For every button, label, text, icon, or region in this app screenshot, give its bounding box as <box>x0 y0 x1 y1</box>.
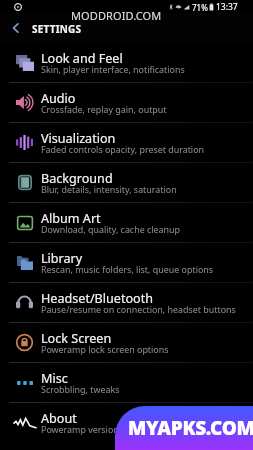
staticText: 71% <box>192 2 208 13</box>
button[interactable]: Headset/Bluetooth <box>0 283 253 322</box>
staticText: Background <box>41 170 113 187</box>
staticText: About <box>41 410 77 427</box>
staticText: Blur, details, intensity, saturation <box>41 183 177 195</box>
staticText: MODDROID.COM <box>71 8 162 23</box>
staticText: Lock Screen <box>41 330 112 347</box>
staticText: Scrobbling, tweaks <box>41 383 120 395</box>
button[interactable]: Audio <box>0 83 253 122</box>
staticText: 13:37 <box>216 1 238 13</box>
staticText: Audio <box>41 90 76 107</box>
button[interactable]: Album Art <box>0 203 253 242</box>
staticText: Faded controls opacity, preset duration <box>41 143 205 155</box>
button[interactable]: Library <box>0 243 253 282</box>
button[interactable]: Visualization <box>0 123 253 162</box>
staticText: Look and Feel <box>41 50 123 67</box>
button[interactable]: Look and Feel <box>0 43 253 82</box>
staticText: Headset/Bluetooth <box>41 290 154 307</box>
staticText: Pause/resume on connection, headset butt… <box>41 303 236 315</box>
button[interactable]: About <box>0 403 253 442</box>
staticText: Rescan, music folders, list, queue optio… <box>41 263 214 275</box>
staticText: Misc <box>41 370 68 387</box>
button[interactable]: Misc <box>0 363 253 402</box>
button[interactable]: Background <box>0 163 253 202</box>
staticText: Skin, player interface, notifications <box>41 63 185 75</box>
staticText: Crossfade, replay gain, output <box>41 103 167 115</box>
staticText: Album Art <box>41 210 101 227</box>
staticText: MYAPKS.COM <box>128 415 253 441</box>
staticText: Library <box>41 250 83 267</box>
staticText: Poweramp lock screen options <box>41 343 169 355</box>
staticText: SETTINGS <box>32 22 82 36</box>
button[interactable]: Back <box>0 13 32 43</box>
button[interactable]: Lock Screen <box>0 323 253 362</box>
staticText: Poweramp version <box>41 423 119 435</box>
staticText: Visualization <box>41 130 116 147</box>
staticText: Download, quality, cache cleanup <box>41 223 180 235</box>
